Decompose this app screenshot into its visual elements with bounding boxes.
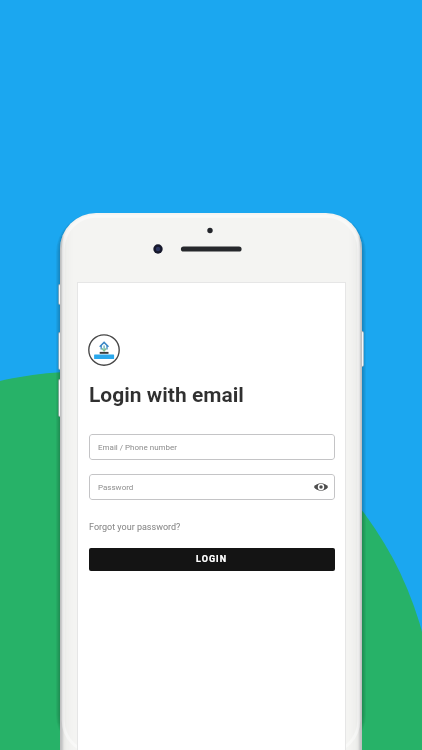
button[interactable]: Password bbox=[89, 474, 335, 500]
button[interactable]: Show password bbox=[313, 479, 329, 495]
staticText: Email / Phone number bbox=[98, 443, 178, 452]
button[interactable]: LOGIN bbox=[89, 548, 335, 571]
staticText: LOGIN bbox=[196, 554, 228, 565]
button[interactable]: Email / Phone number bbox=[89, 434, 335, 460]
staticText: Password bbox=[98, 483, 134, 492]
button[interactable]: Forgot your password? bbox=[89, 522, 181, 533]
staticText: Login with email bbox=[89, 383, 244, 408]
